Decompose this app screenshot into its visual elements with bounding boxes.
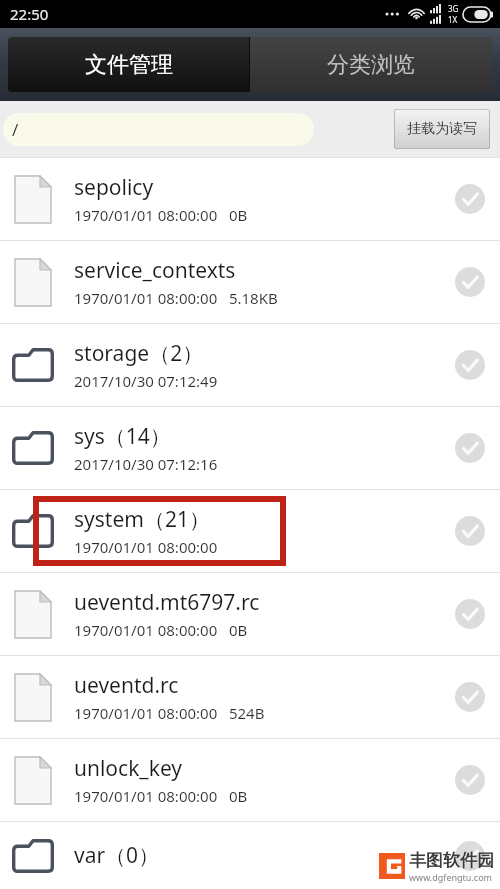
staticText: 1970/01/01 08:00:00 <box>74 537 218 557</box>
staticText: 挂载为读写 <box>407 120 477 138</box>
staticText: 2017/10/30 07:12:16 <box>74 454 218 474</box>
staticText: sys（14） <box>74 422 171 451</box>
button[interactable]: unlock_key <box>0 739 500 821</box>
button[interactable]: var（0） <box>0 822 500 889</box>
staticText: www.dgfengtu.com <box>409 871 493 883</box>
staticText: 分类浏览 <box>327 51 415 79</box>
staticText: 3G <box>448 3 459 14</box>
button[interactable]: 挂载为读写 <box>394 109 490 149</box>
button[interactable]: sys（14） <box>0 407 500 489</box>
staticText: sepolicy <box>74 173 154 202</box>
staticText: 丰图软件园 <box>409 850 494 871</box>
button[interactable]: service_contexts <box>0 241 500 323</box>
staticText: 文件管理 <box>85 51 173 79</box>
staticText: 1X <box>448 14 458 25</box>
button[interactable]: Select ueventd.mt6797.rc <box>446 590 494 638</box>
staticText: ueventd.rc <box>74 671 179 700</box>
staticText: 1970/01/01 08:00:00 0B <box>74 786 248 806</box>
button[interactable]: 文件管理 <box>8 37 249 92</box>
staticText: 1970/01/01 08:00:00 0B <box>74 205 248 225</box>
button[interactable]: system（21） <box>0 490 500 572</box>
button[interactable]: Select system（21） <box>446 507 494 555</box>
staticText: storage（2） <box>74 339 204 368</box>
button[interactable]: Select var（0） <box>446 832 494 880</box>
staticText: unlock_key <box>74 754 183 783</box>
button[interactable]: ueventd.mt6797.rc <box>0 573 500 655</box>
button[interactable]: storage（2） <box>0 324 500 406</box>
button[interactable]: ueventd.rc <box>0 656 500 738</box>
button[interactable]: Select ueventd.rc <box>446 673 494 721</box>
button[interactable]: / <box>3 113 314 146</box>
staticText: ueventd.mt6797.rc <box>74 588 260 617</box>
staticText: 2017/10/30 07:12:49 <box>74 371 218 391</box>
staticText: / <box>12 118 19 141</box>
button[interactable]: Select sepolicy <box>446 175 494 223</box>
staticText: 1970/01/01 08:00:00 5.18KB <box>74 288 278 308</box>
button[interactable]: Select unlock_key <box>446 756 494 804</box>
staticText: 1970/01/01 08:00:00 524B <box>74 703 265 723</box>
staticText: var（0） <box>74 841 160 870</box>
button[interactable]: Select sys（14） <box>446 424 494 472</box>
button[interactable]: sepolicy <box>0 158 500 240</box>
staticText: 22:50 <box>10 4 49 24</box>
button[interactable]: Select storage（2） <box>446 341 494 389</box>
staticText: system（21） <box>74 505 210 534</box>
button[interactable]: 分类浏览 <box>250 37 492 92</box>
staticText: 1970/01/01 08:00:00 0B <box>74 620 248 640</box>
button[interactable]: Select service_contexts <box>446 258 494 306</box>
staticText: service_contexts <box>74 256 236 285</box>
